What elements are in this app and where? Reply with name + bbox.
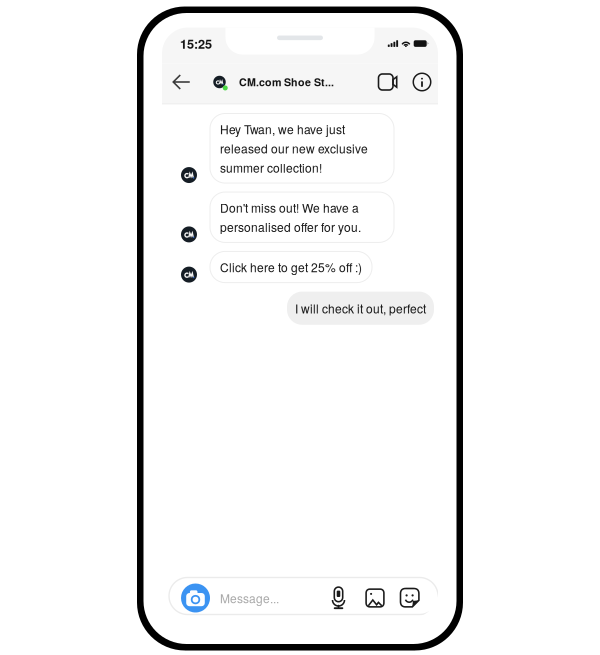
button[interactable]: Photo	[365, 582, 385, 614]
staticText: Click here to get 25% off :)	[220, 258, 362, 276]
button[interactable]: Video call	[371, 61, 406, 102]
button[interactable]: Back	[166, 61, 197, 102]
button[interactable]: Sticker	[400, 582, 420, 614]
button[interactable]: Voice message	[326, 582, 351, 614]
button[interactable]: Info	[406, 61, 438, 102]
staticText: CM.com Shoe St...	[239, 74, 334, 90]
staticText: Don't miss out! We have a personalised o…	[220, 199, 361, 235]
staticText: I will check it out, perfect	[295, 300, 426, 317]
button[interactable]: Camera	[180, 582, 211, 613]
staticText: Message...	[220, 589, 279, 607]
staticText: 15:25	[180, 34, 212, 53]
staticText: Hey Twan, we have just released our new …	[220, 120, 368, 176]
